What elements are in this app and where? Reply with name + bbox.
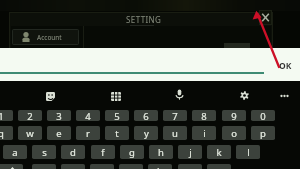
button[interactable]: b — [148, 164, 172, 169]
button[interactable]: m — [207, 164, 231, 169]
button[interactable]: 7 — [163, 110, 187, 121]
button[interactable]: v — [119, 164, 143, 169]
button[interactable]: l — [236, 145, 260, 159]
staticText: 7 — [172, 110, 178, 121]
staticText: 5 — [114, 110, 120, 121]
staticText: k — [216, 146, 222, 159]
staticText: g — [129, 146, 135, 159]
button[interactable]: g — [120, 145, 144, 159]
button[interactable]: i — [192, 126, 216, 140]
button[interactable]: 3 — [47, 110, 71, 121]
staticText: e — [56, 127, 62, 140]
button[interactable]: Shift — [0, 164, 23, 169]
button[interactable]: Account — [12, 29, 79, 45]
button[interactable]: f — [91, 145, 115, 159]
button[interactable]: 6 — [134, 110, 158, 121]
staticText: p — [260, 127, 266, 140]
staticText: r — [86, 127, 90, 140]
button[interactable]: x — [61, 164, 85, 169]
staticText: w — [26, 127, 34, 140]
staticText: 4 — [85, 110, 91, 121]
button[interactable]: d — [61, 145, 85, 159]
staticText: h — [158, 146, 164, 159]
button[interactable]: 4 — [76, 110, 100, 121]
button[interactable]: Close — [259, 10, 272, 25]
button[interactable]: More options — [280, 93, 289, 99]
button[interactable]: 1 — [0, 110, 13, 121]
staticText: d — [70, 146, 76, 159]
staticText: 3 — [56, 110, 62, 121]
staticText: 6 — [143, 110, 149, 121]
button[interactable]: 9 — [222, 110, 246, 121]
staticText: l — [247, 146, 250, 159]
button[interactable]: p — [251, 126, 275, 140]
button[interactable]: GIF — [111, 92, 121, 101]
button[interactable]: Voice input — [175, 89, 184, 100]
staticText: OK — [279, 60, 292, 72]
button[interactable]: k — [207, 145, 231, 159]
button[interactable]: 2 — [18, 110, 42, 121]
staticText: Account — [37, 33, 62, 42]
staticText: i — [203, 127, 206, 140]
staticText: u — [172, 127, 178, 140]
button[interactable]: 0 — [251, 110, 275, 121]
button[interactable]: z — [32, 164, 56, 169]
staticText: a — [12, 146, 18, 159]
button[interactable]: 5 — [105, 110, 129, 121]
staticText: 2 — [27, 110, 33, 121]
button[interactable]: o — [222, 126, 246, 140]
staticText: s — [42, 146, 47, 159]
staticText: f — [101, 146, 105, 159]
button[interactable]: t — [105, 126, 129, 140]
staticText: 1 — [0, 110, 4, 121]
staticText: b — [157, 165, 163, 169]
staticText: t — [115, 127, 119, 140]
button[interactable]: c — [90, 164, 114, 169]
button[interactable]: 8 — [192, 110, 216, 121]
button[interactable]: Settings — [240, 91, 249, 100]
staticText: y — [144, 127, 149, 140]
button[interactable]: h — [149, 145, 173, 159]
button[interactable]: w — [18, 126, 42, 140]
button[interactable]: r — [76, 126, 100, 140]
staticText: j — [189, 146, 192, 159]
button[interactable]: q — [0, 126, 13, 140]
staticText: 8 — [201, 110, 207, 121]
button[interactable]: n — [178, 164, 202, 169]
button[interactable]: u — [163, 126, 187, 140]
staticText: o — [231, 127, 237, 140]
button[interactable]: e — [47, 126, 71, 140]
button[interactable]: s — [32, 145, 56, 159]
staticText: q — [0, 127, 4, 140]
button[interactable]: y — [134, 126, 158, 140]
button[interactable]: Emoji — [46, 92, 55, 101]
button[interactable]: a — [3, 145, 27, 159]
staticText: 9 — [231, 110, 237, 121]
button[interactable]: j — [178, 145, 202, 159]
staticText: 0 — [260, 110, 266, 121]
staticText: SETTING — [126, 14, 162, 25]
